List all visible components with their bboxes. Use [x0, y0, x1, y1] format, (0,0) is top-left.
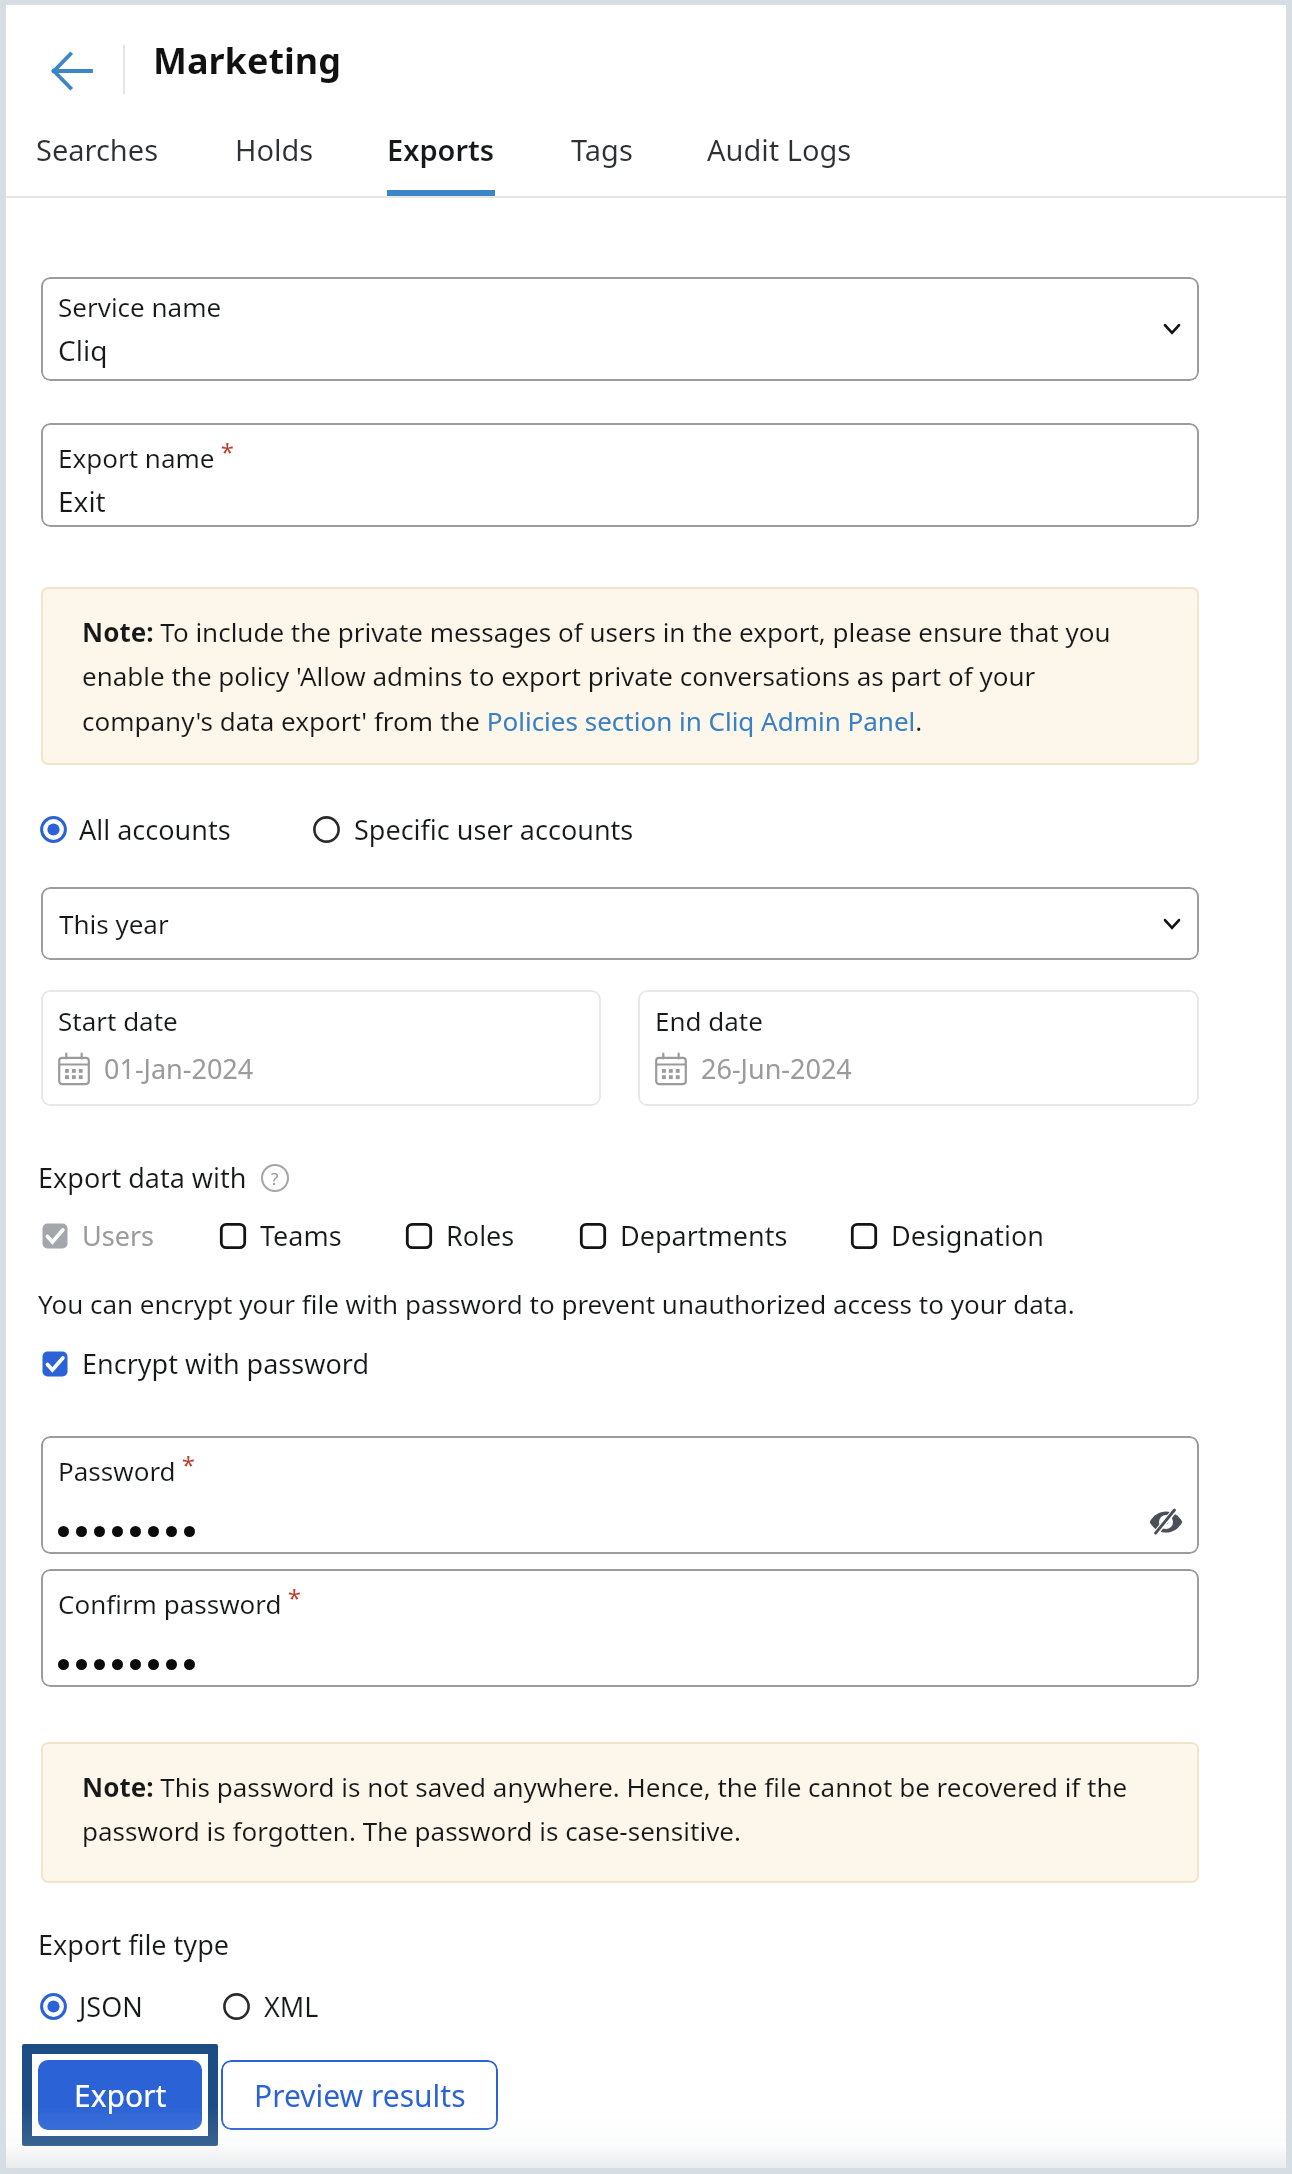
button[interactable]: Searches: [36, 115, 159, 196]
staticText: Marketing: [153, 36, 341, 85]
button[interactable]: Help: [261, 1164, 289, 1192]
staticText: Start date: [58, 1003, 178, 1038]
button[interactable]: Start date: [41, 990, 601, 1106]
staticText: Tags: [571, 130, 633, 169]
staticText: Note: To include the private messages of…: [82, 614, 1144, 739]
button[interactable]: Specific user accounts: [313, 811, 634, 848]
button[interactable]: Confirm password *: [41, 1569, 1199, 1687]
staticText: You can encrypt your file with password …: [38, 1286, 1075, 1321]
staticText: Holds: [235, 130, 314, 169]
button[interactable]: Preview results: [221, 2060, 498, 2130]
staticText: 26-Jun-2024: [701, 1050, 852, 1087]
staticText: Export file type: [38, 1926, 229, 1963]
staticText: All accounts: [79, 811, 231, 848]
staticText: Cliq: [58, 331, 108, 369]
staticText: Confirm password *: [58, 1581, 302, 1621]
button[interactable]: Holds: [235, 115, 314, 196]
staticText: Exports: [387, 130, 495, 169]
staticText: XML: [264, 1988, 319, 2025]
staticText: Preview results: [254, 2075, 466, 2116]
button[interactable]: JSON: [38, 1988, 143, 2025]
button[interactable]: Roles: [406, 1217, 515, 1254]
staticText: Service name: [58, 289, 222, 324]
staticText: This year: [59, 906, 169, 941]
staticText: Designation: [891, 1217, 1045, 1254]
button[interactable]: Encrypt with password: [38, 1345, 369, 1382]
button[interactable]: Show password: [1149, 1511, 1183, 1533]
staticText: Password *: [58, 1448, 196, 1488]
button[interactable]: Export name *: [41, 423, 1199, 527]
staticText: Departments: [620, 1217, 788, 1254]
staticText: Searches: [36, 130, 159, 169]
button[interactable]: Service name: [41, 277, 1199, 381]
button[interactable]: All accounts: [38, 811, 231, 848]
staticText: JSON: [79, 1988, 143, 2025]
staticText: Users: [82, 1217, 154, 1254]
button[interactable]: Back: [46, 45, 98, 97]
button[interactable]: XML: [223, 1988, 319, 2025]
staticText: End date: [655, 1003, 763, 1038]
staticText: Exit: [58, 482, 106, 520]
button[interactable]: Audit Logs: [707, 115, 852, 196]
staticText: ?: [271, 1167, 279, 1190]
staticText: Specific user accounts: [354, 811, 634, 848]
button[interactable]: Password *: [41, 1436, 1199, 1554]
staticText: Note: This password is not saved anywher…: [82, 1769, 1144, 1849]
staticText: 01-Jan-2024: [104, 1050, 254, 1087]
button[interactable]: Departments: [580, 1217, 788, 1254]
staticText: Export data with: [38, 1159, 247, 1196]
button[interactable]: Designation: [851, 1217, 1045, 1254]
button[interactable]: End date: [638, 990, 1199, 1106]
staticText: Export name *: [58, 435, 234, 475]
button[interactable]: Export: [38, 2060, 202, 2130]
button[interactable]: Users: [42, 1217, 154, 1254]
button[interactable]: Tags: [571, 115, 633, 196]
button[interactable]: This year: [41, 887, 1199, 960]
staticText: Encrypt with password: [82, 1345, 369, 1382]
staticText: Roles: [446, 1217, 515, 1254]
staticText: Export: [74, 2075, 167, 2116]
staticText: Audit Logs: [707, 130, 852, 169]
staticText: Teams: [260, 1217, 342, 1254]
button[interactable]: Exports: [387, 115, 495, 196]
button[interactable]: Teams: [220, 1217, 342, 1254]
